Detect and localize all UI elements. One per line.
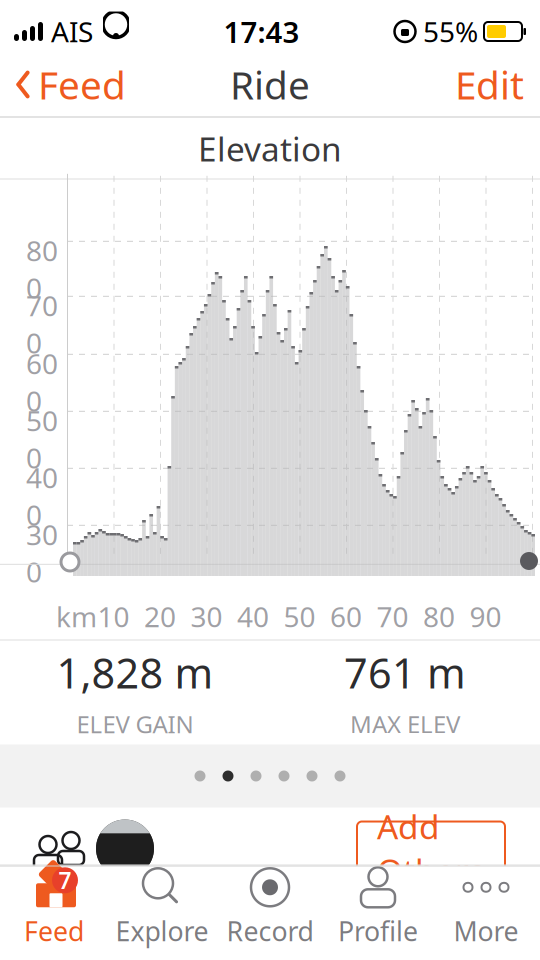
staticText: Explore bbox=[115, 913, 208, 949]
button[interactable]: Profile bbox=[324, 865, 432, 948]
button[interactable]: More bbox=[432, 865, 540, 948]
staticText: Elevation bbox=[198, 126, 342, 171]
staticText: 55% bbox=[423, 13, 478, 50]
staticText: Record bbox=[226, 913, 313, 949]
staticText: 50 bbox=[283, 598, 315, 635]
staticText: km bbox=[56, 598, 97, 635]
staticText: 60 bbox=[330, 598, 362, 635]
button[interactable]: Athletes bbox=[22, 820, 96, 876]
button[interactable]: 7 bbox=[0, 865, 108, 948]
staticText: 90 bbox=[469, 598, 501, 635]
staticText: Profile bbox=[338, 913, 418, 949]
staticText: 300 bbox=[26, 516, 58, 590]
staticText: ELEV GAIN bbox=[76, 708, 193, 740]
button[interactable]: Edit bbox=[439, 51, 540, 117]
staticText: Feed bbox=[38, 59, 126, 110]
button[interactable]: Record bbox=[216, 865, 324, 948]
button[interactable]: Feed bbox=[0, 51, 140, 117]
staticText: 17:43 bbox=[223, 12, 299, 51]
staticText: 700 bbox=[26, 287, 58, 361]
button[interactable]: Add Others bbox=[357, 821, 505, 875]
staticText: Add Others bbox=[377, 804, 485, 893]
staticText: Edit bbox=[455, 59, 524, 110]
staticText: 600 bbox=[26, 345, 58, 419]
staticText: 10 bbox=[97, 598, 129, 635]
staticText: More bbox=[453, 913, 518, 949]
staticText: 761 m bbox=[344, 645, 466, 700]
staticText: Feed bbox=[24, 913, 84, 949]
staticText: 1,828 m bbox=[56, 645, 213, 700]
staticText: Ride bbox=[230, 59, 310, 110]
staticText: 30 bbox=[190, 598, 222, 635]
staticText: 800 bbox=[26, 232, 58, 306]
staticText: 500 bbox=[26, 402, 58, 476]
staticText: 7 bbox=[58, 865, 71, 895]
staticText: MAX ELEV bbox=[350, 708, 460, 740]
button[interactable]: Explore bbox=[108, 865, 216, 948]
staticText: 80 bbox=[423, 598, 455, 635]
staticText: 20 bbox=[144, 598, 176, 635]
staticText: AIS bbox=[51, 13, 93, 50]
staticText: 40 bbox=[237, 598, 269, 635]
staticText: 400 bbox=[26, 459, 58, 533]
staticText: 70 bbox=[376, 598, 408, 635]
